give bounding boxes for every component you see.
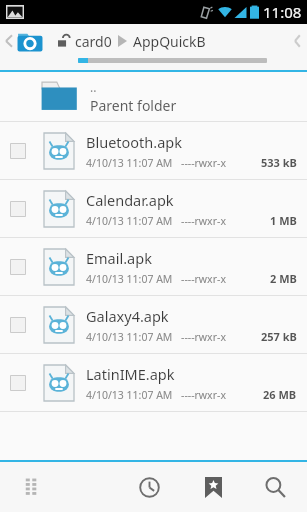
button[interactable]: Select Calendar.apk	[0, 180, 307, 237]
button[interactable]: card0	[75, 32, 112, 51]
staticText: card0	[75, 32, 112, 51]
button[interactable]: Select LatinIME.apk	[0, 354, 307, 411]
button[interactable]: Camera folder	[16, 27, 44, 55]
staticText: Galaxy4.apk	[86, 306, 169, 326]
button[interactable]: Select Calendar.apk	[10, 201, 26, 217]
button[interactable]: Select Galaxy4.apk	[10, 317, 26, 333]
staticText: 2 MB	[270, 271, 297, 286]
staticText: 1 MB	[270, 213, 297, 228]
button[interactable]: Select LatinIME.apk	[10, 375, 26, 391]
staticText: 257 kB	[261, 329, 297, 344]
button[interactable]: Scroll left	[4, 32, 14, 50]
staticText: ----rwxr-x	[181, 272, 226, 286]
button[interactable]: ..	[0, 72, 307, 121]
staticText: 4/10/13 11:07 AM	[86, 330, 173, 344]
staticText: LatinIME.apk	[86, 364, 175, 384]
staticText: ----rwxr-x	[181, 214, 226, 228]
button[interactable]: Select Email.apk	[0, 238, 307, 295]
button[interactable]: AppQuickBackupFiles	[133, 32, 213, 51]
button[interactable]: Menu	[14, 470, 48, 504]
staticText: ----rwxr-x	[181, 330, 226, 344]
staticText: AppQuickBackupFiles	[133, 32, 213, 51]
staticText: 4/10/13 11:07 AM	[86, 214, 173, 228]
button[interactable]: Search	[253, 465, 297, 509]
staticText: 4/10/13 11:07 AM	[86, 388, 173, 402]
staticText: ..	[90, 79, 97, 95]
button[interactable]: Bookmarks	[191, 465, 235, 509]
staticText: 533 kB	[261, 155, 297, 170]
staticText: Bluetooth.apk	[86, 132, 182, 152]
staticText: 4/10/13 11:07 AM	[86, 156, 173, 170]
button[interactable]: Select Bluetooth.apk	[0, 122, 307, 179]
staticText: 11:08	[263, 2, 302, 22]
button[interactable]: Select Email.apk	[10, 259, 26, 275]
button[interactable]: Scroll right	[293, 32, 301, 50]
staticText: Calendar.apk	[86, 190, 174, 210]
staticText: 26 MB	[263, 387, 297, 402]
button[interactable]: Select Galaxy4.apk	[0, 296, 307, 353]
staticText: 4/10/13 11:07 AM	[86, 272, 173, 286]
button[interactable]: History	[127, 465, 171, 509]
staticText: Parent folder	[90, 96, 177, 115]
staticText: ----rwxr-x	[181, 156, 226, 170]
staticText: Email.apk	[86, 248, 152, 268]
staticText: ----rwxr-x	[181, 388, 226, 402]
button[interactable]: Select Bluetooth.apk	[10, 143, 26, 159]
